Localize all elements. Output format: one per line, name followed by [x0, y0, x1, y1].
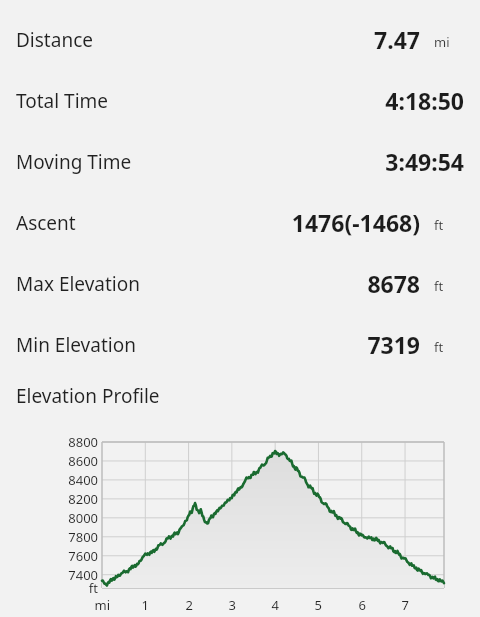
staticText: 7	[401, 596, 409, 614]
staticText: mi	[94, 596, 110, 614]
staticText: 6	[358, 596, 366, 614]
button[interactable]: Total Time	[0, 70, 480, 131]
button[interactable]: Ascent	[0, 192, 480, 253]
staticText: 7400	[68, 566, 98, 584]
staticText: 3	[228, 596, 236, 614]
staticText: ft	[434, 338, 444, 356]
staticText: ft	[88, 579, 98, 597]
staticText: 8678	[367, 268, 420, 299]
staticText: mi	[434, 33, 450, 51]
staticText: 7600	[68, 547, 98, 565]
staticText: Ascent	[16, 210, 76, 236]
staticText: ft	[434, 277, 444, 295]
staticText: 2	[185, 596, 193, 614]
staticText: 7800	[68, 528, 98, 546]
staticText: Moving Time	[16, 149, 132, 175]
staticText: 4:18:50	[385, 85, 464, 116]
button[interactable]: Moving Time	[0, 131, 480, 192]
staticText: 8800	[68, 433, 98, 451]
staticText: 1476(-1468)	[291, 207, 420, 238]
staticText: Max Elevation	[16, 271, 140, 297]
button[interactable]: Distance	[0, 9, 480, 70]
staticText: 3:49:54	[385, 146, 464, 177]
staticText: 8400	[68, 471, 98, 489]
staticText: 8600	[68, 452, 98, 470]
staticText: 5	[314, 596, 322, 614]
button[interactable]: Max Elevation	[0, 253, 480, 314]
staticText: 7.47	[374, 24, 420, 55]
staticText: 8200	[68, 490, 98, 508]
staticText: 4	[271, 596, 279, 614]
staticText: Total Time	[16, 88, 109, 114]
staticText: Min Elevation	[16, 332, 136, 358]
staticText: 8000	[68, 509, 98, 527]
button[interactable]: Min Elevation	[0, 314, 480, 375]
staticText: Elevation Profile	[16, 383, 160, 409]
staticText: 7319	[367, 329, 420, 360]
staticText: 1	[141, 596, 149, 614]
staticText: ft	[434, 216, 444, 234]
staticText: Distance	[16, 27, 93, 53]
